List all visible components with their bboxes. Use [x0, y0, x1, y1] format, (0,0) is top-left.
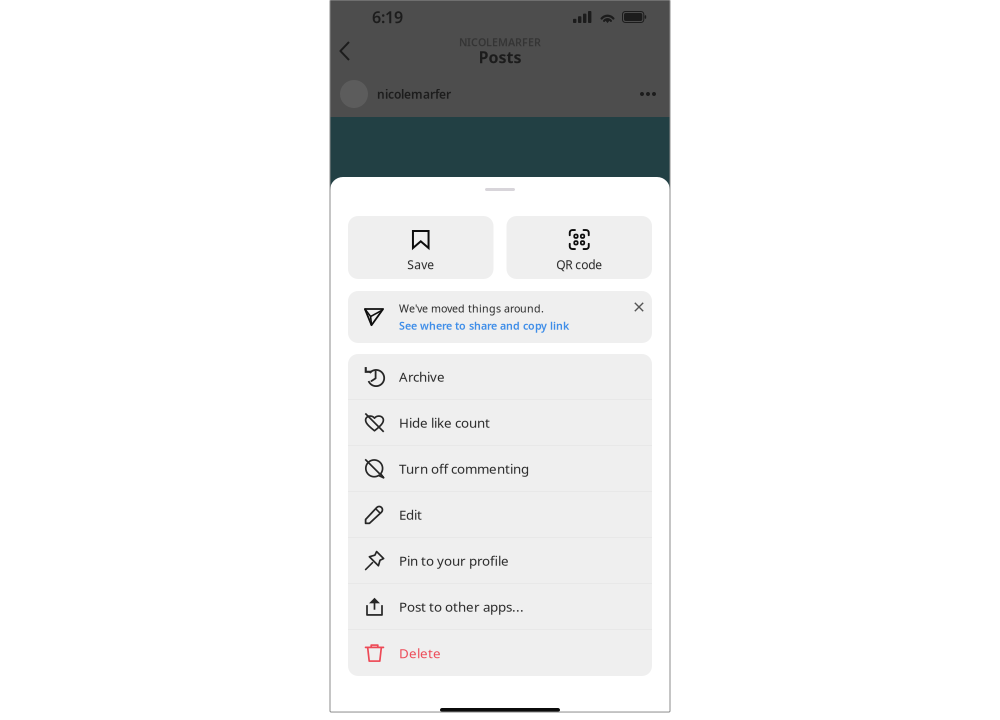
- button[interactable]: Save: [348, 216, 493, 279]
- staticText: Save: [407, 256, 434, 272]
- button[interactable]: Dismiss: [628, 296, 650, 318]
- staticText: See where to share and copy link: [399, 318, 569, 333]
- staticText: Turn off commenting: [399, 460, 529, 477]
- staticText: Post to other apps...: [399, 598, 524, 615]
- staticText: nicolemarfer: [377, 86, 451, 102]
- button[interactable]: Pin to your profile: [348, 538, 652, 584]
- staticText: Posts: [478, 46, 521, 68]
- staticText: NICOLEMARFER: [459, 35, 541, 49]
- button[interactable]: Hide like count: [348, 400, 652, 446]
- staticText: Hide like count: [399, 414, 490, 431]
- staticText: Pin to your profile: [399, 552, 509, 569]
- button[interactable]: More options: [635, 81, 661, 107]
- button[interactable]: Post to other apps...: [348, 584, 652, 630]
- button[interactable]: Turn off commenting: [348, 446, 652, 492]
- staticText: We've moved things around.: [399, 301, 544, 315]
- staticText: 6:19: [372, 6, 403, 28]
- button[interactable]: Archive: [348, 354, 652, 400]
- button[interactable]: Delete: [348, 630, 652, 676]
- button[interactable]: Back: [330, 36, 360, 66]
- staticText: QR code: [556, 256, 602, 272]
- button[interactable]: QR code: [506, 216, 652, 279]
- staticText: Edit: [399, 506, 422, 523]
- button[interactable]: Edit: [348, 492, 652, 538]
- staticText: Delete: [399, 644, 441, 662]
- staticText: Archive: [399, 368, 445, 385]
